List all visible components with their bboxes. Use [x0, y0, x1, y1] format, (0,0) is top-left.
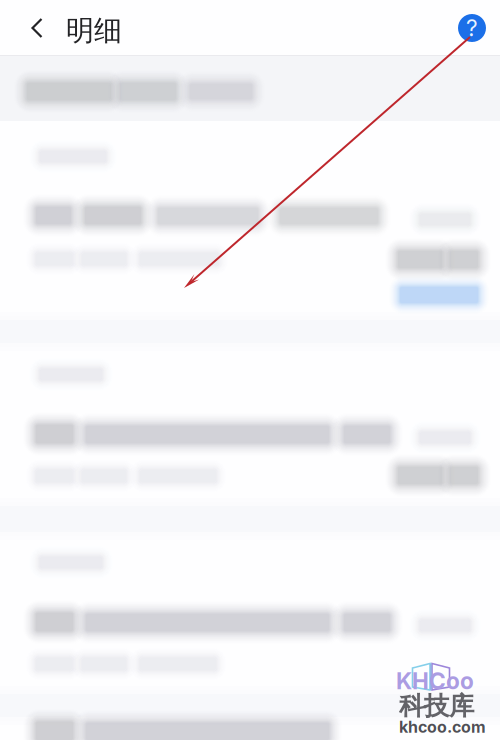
staticText: 科技库 — [399, 690, 474, 722]
staticText: 明细 — [66, 13, 122, 48]
staticText: ? — [466, 14, 478, 42]
button[interactable]: Back — [10, 1, 64, 55]
staticText: KHCoo — [396, 667, 474, 695]
button[interactable]: Help — [450, 6, 494, 50]
staticText: khcoo.com — [399, 717, 486, 737]
